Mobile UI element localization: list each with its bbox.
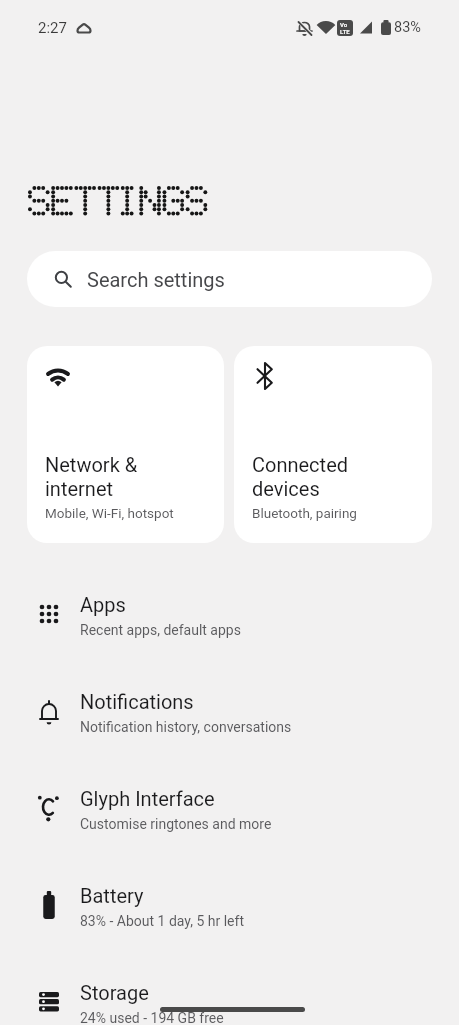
staticText: Connected devices — [252, 453, 349, 501]
staticText: Vo — [340, 21, 348, 28]
staticText: Customise ringtones and more — [80, 816, 272, 832]
staticText: LTE — [340, 28, 350, 35]
staticText: Notification history, conversations — [80, 719, 292, 735]
staticText: Battery — [80, 884, 144, 907]
button[interactable]: Connected devices — [234, 346, 432, 543]
staticText: Storage — [80, 981, 149, 1004]
staticText: Mobile, Wi-Fi, hotspot — [45, 505, 174, 521]
button[interactable]: Notifications — [0, 674, 459, 771]
staticText: Apps — [80, 593, 126, 616]
button[interactable]: Search settings — [27, 251, 432, 307]
staticText: 24% used - 194 GB free — [80, 1010, 224, 1025]
button[interactable]: Network & internet — [27, 346, 224, 543]
staticText: Notifications — [80, 690, 194, 713]
button[interactable]: Storage — [0, 965, 459, 1025]
button[interactable]: Battery — [0, 868, 459, 965]
button[interactable]: Apps — [0, 577, 459, 674]
staticText: 2:27 — [38, 19, 67, 37]
button[interactable]: Glyph Interface — [0, 771, 459, 868]
staticText: Bluetooth, pairing — [252, 505, 357, 521]
staticText: 83% - About 1 day, 5 hr left — [80, 913, 244, 929]
staticText: Glyph Interface — [80, 787, 215, 810]
staticText: Network & internet — [45, 453, 138, 501]
staticText: 83% — [394, 19, 421, 36]
staticText: Search settings — [87, 268, 225, 291]
staticText: Recent apps, default apps — [80, 622, 241, 638]
